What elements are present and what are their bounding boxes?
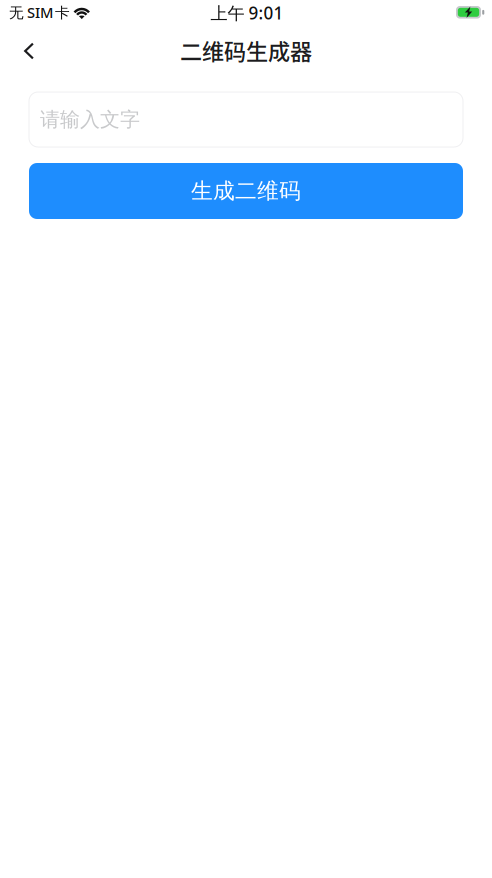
button[interactable]: 生成二维码 [29,163,463,219]
button[interactable]: 请输入文字 [29,92,463,147]
staticText: 请输入文字 [40,107,140,132]
staticText: 无 SIM 卡 [9,2,70,22]
staticText: 生成二维码 [191,177,301,205]
staticText: 上午 9:01 [210,1,283,24]
button[interactable]: 返回 [8,30,50,72]
staticText: 二维码生成器 [180,34,312,66]
